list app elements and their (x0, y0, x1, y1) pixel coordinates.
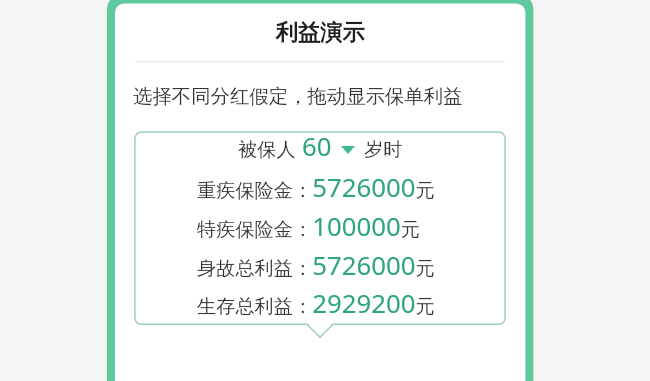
staticText: 特疾保险金：100000元 (197, 208, 420, 243)
staticText: 选择不同分红假定，拖动显示保单利益 (133, 84, 463, 108)
staticText: 岁时 (364, 138, 403, 162)
button[interactable]: 选择被保人年龄 (300, 126, 358, 158)
staticText: 利益演示 (115, 19, 525, 47)
staticText: 重疾保险金：5726000元 (197, 169, 435, 204)
staticText: 60 (302, 128, 332, 160)
staticText: 生存总利益：2929200元 (197, 285, 435, 320)
staticText: 身故总利益：5726000元 (197, 247, 435, 282)
staticText: 被保人 (238, 138, 296, 162)
